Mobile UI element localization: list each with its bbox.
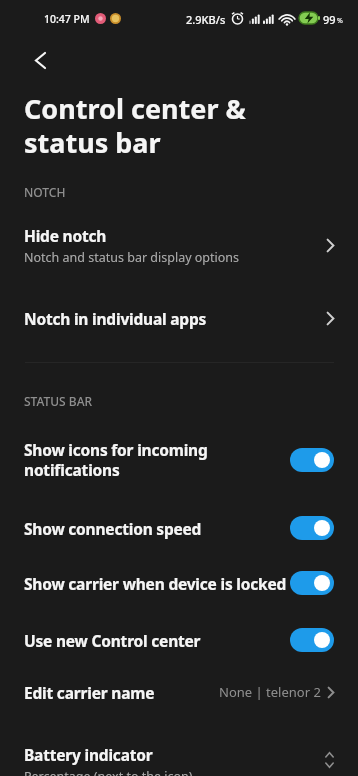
button[interactable]: Show carrier when device is locked bbox=[0, 553, 358, 613]
button[interactable]: Use new Control center bbox=[0, 610, 358, 670]
staticText: Percentage (next to the icon) bbox=[24, 768, 193, 776]
staticText: Control center & status bar bbox=[24, 90, 246, 161]
button[interactable] bbox=[18, 44, 62, 76]
button[interactable] bbox=[290, 628, 334, 652]
staticText: Battery indicator bbox=[24, 744, 153, 765]
staticText: Show icons for incoming notifications bbox=[24, 439, 290, 481]
button[interactable] bbox=[290, 571, 334, 595]
staticText: Show connection speed bbox=[24, 518, 290, 539]
staticText: Use new Control center bbox=[24, 630, 290, 651]
button[interactable]: Hide notch bbox=[0, 213, 358, 277]
button[interactable]: Battery indicator bbox=[0, 734, 358, 776]
staticText: Edit carrier name bbox=[24, 682, 219, 703]
staticText: None | telenor 2 bbox=[219, 683, 321, 701]
staticText: 99 bbox=[323, 12, 336, 27]
staticText: 10:47 PM bbox=[44, 12, 90, 26]
button[interactable]: Show connection speed bbox=[0, 498, 358, 558]
staticText: Notch in individual apps bbox=[24, 308, 327, 329]
staticText: % bbox=[337, 16, 343, 26]
staticText: NOTCH bbox=[24, 184, 66, 200]
button[interactable]: Notch in individual apps bbox=[0, 289, 358, 347]
button[interactable]: Edit carrier name bbox=[0, 662, 358, 722]
button[interactable] bbox=[290, 516, 334, 540]
staticText: Hide notch bbox=[24, 225, 107, 246]
button[interactable]: Show icons for incoming notifications bbox=[0, 425, 358, 495]
staticText: Notch and status bar display options bbox=[24, 249, 240, 266]
staticText: 2.9KB/s bbox=[186, 12, 226, 27]
staticText: STATUS BAR bbox=[24, 393, 93, 409]
button[interactable] bbox=[290, 448, 334, 472]
staticText: Show carrier when device is locked bbox=[24, 573, 290, 594]
